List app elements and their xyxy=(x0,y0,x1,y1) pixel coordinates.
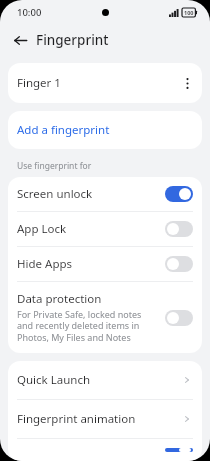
button[interactable]: More options xyxy=(178,74,196,92)
button[interactable]: Back xyxy=(9,29,31,51)
button[interactable] xyxy=(165,221,193,237)
button[interactable]: App Lock xyxy=(8,212,202,246)
staticText: Fingerprint xyxy=(36,31,109,49)
button[interactable]: Screen unlock xyxy=(8,177,202,211)
staticText: For Private Safe, locked notes and recen… xyxy=(17,308,157,344)
button[interactable]: Show fingerprint icon xyxy=(8,439,202,461)
staticText: App Lock xyxy=(17,221,67,237)
button[interactable] xyxy=(165,186,193,202)
button[interactable]: Finger 1 xyxy=(8,63,202,103)
staticText: Quick Launch xyxy=(17,372,181,388)
button[interactable] xyxy=(165,256,193,272)
staticText: Use fingerprint for xyxy=(17,160,92,172)
staticText: Data protection xyxy=(17,291,102,307)
button[interactable] xyxy=(165,310,193,326)
staticText: Finger 1 xyxy=(17,75,178,91)
button[interactable] xyxy=(165,448,193,452)
staticText: Add a fingerprint xyxy=(17,122,110,138)
staticText: Fingerprint animation xyxy=(17,411,181,427)
button[interactable]: Hide Apps xyxy=(8,247,202,281)
button[interactable]: Add a fingerprint xyxy=(8,111,202,149)
staticText: 100 xyxy=(184,9,194,16)
staticText: Screen unlock xyxy=(17,186,93,202)
staticText: 10:00 xyxy=(17,6,42,19)
button[interactable]: Fingerprint animation xyxy=(8,400,202,438)
staticText: Hide Apps xyxy=(17,256,73,272)
button[interactable]: Quick Launch xyxy=(8,361,202,399)
button[interactable]: Data protection xyxy=(8,282,202,353)
